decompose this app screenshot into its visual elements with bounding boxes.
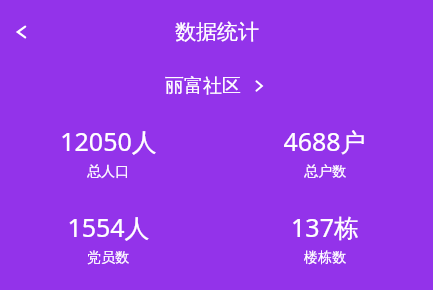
staticText: 137栋 [291, 210, 359, 244]
button[interactable]: 137栋 [216, 210, 433, 267]
button[interactable]: Back [4, 15, 38, 49]
staticText: 12050人 [60, 124, 157, 158]
button[interactable]: 12050人 [0, 124, 216, 181]
staticText: 楼栋数 [304, 249, 346, 267]
staticText: 4688户 [283, 124, 366, 158]
staticText: 1554人 [67, 210, 150, 244]
button[interactable]: 1554人 [0, 210, 216, 267]
staticText: 丽富社区 [165, 74, 241, 98]
button[interactable]: 丽富社区 [165, 74, 268, 98]
staticText: 党员数 [87, 249, 129, 267]
staticText: 总户数 [304, 163, 346, 181]
button[interactable]: 4688户 [216, 124, 433, 181]
staticText: 总人口 [87, 163, 129, 181]
staticText: 数据统计 [175, 19, 259, 45]
